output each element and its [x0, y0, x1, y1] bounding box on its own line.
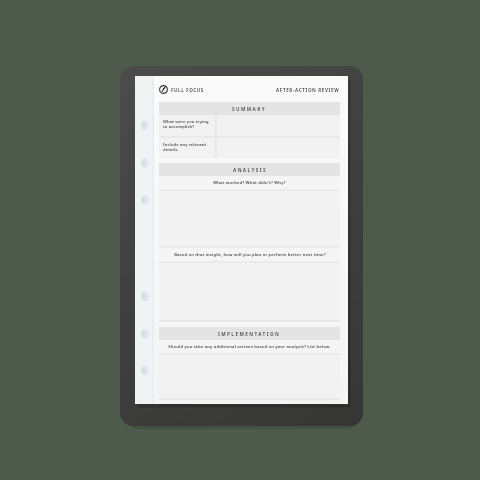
staticText: FULL FOCUS: [171, 87, 204, 93]
button[interactable]: ANALYSIS: [159, 163, 340, 176]
button[interactable]: SUMMARY: [159, 102, 340, 115]
button[interactable]: Full Focus: [159, 85, 204, 94]
button[interactable]: Include any relevant details.: [159, 138, 340, 158]
button[interactable]: What were you trying to accomplish?: [159, 115, 340, 137]
button[interactable]: Based on that insight, how will you plan…: [159, 248, 340, 262]
staticText: Based on that insight, how will you plan…: [174, 252, 326, 258]
staticText: What worked? What didn't? Why?: [213, 180, 286, 186]
staticText: Include any relevant details.: [163, 142, 207, 152]
staticText: ANALYSIS: [233, 167, 267, 173]
button[interactable]: What worked? What didn't? Why?: [159, 176, 340, 190]
staticText: SUMMARY: [232, 106, 267, 112]
button[interactable]: AFTER-ACTION REVIEW: [276, 87, 340, 93]
staticText: IMPLEMENTATION: [218, 331, 281, 337]
staticText: Should you take any additional actions b…: [168, 344, 331, 350]
button[interactable]: Should you take any additional actions b…: [159, 340, 340, 354]
button[interactable]: IMPLEMENTATION: [159, 327, 340, 340]
staticText: What were you trying to accomplish?: [163, 119, 209, 129]
